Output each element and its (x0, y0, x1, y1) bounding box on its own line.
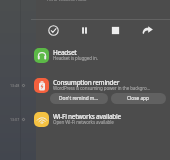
staticText: Open Wi-Fi networks available (53, 119, 114, 125)
staticText: Headset is plugged in. (53, 55, 98, 61)
staticText: Don't remind m... (59, 95, 99, 102)
staticText: 13:07 (10, 117, 20, 122)
button[interactable] (0, 74, 170, 98)
button[interactable]: Share (140, 22, 155, 37)
button[interactable]: Close app (111, 93, 166, 104)
button[interactable] (0, 108, 170, 132)
button[interactable]: Mute notifications (46, 23, 61, 38)
button[interactable] (0, 44, 170, 68)
staticText: 13:48 (10, 83, 20, 88)
staticText: Consumption reminder (53, 78, 120, 87)
button[interactable]: Don't remind m... (50, 93, 108, 104)
button[interactable]: Stop (108, 23, 123, 38)
staticText: TWO WEEKS AGO (46, 0, 87, 3)
staticText: WordPress is consuming power in the back… (53, 85, 150, 91)
staticText: Close app (127, 95, 150, 102)
staticText: Headset (53, 48, 77, 57)
staticText: Wi-Fi networks available (53, 112, 121, 121)
button[interactable]: Pause (77, 23, 92, 38)
